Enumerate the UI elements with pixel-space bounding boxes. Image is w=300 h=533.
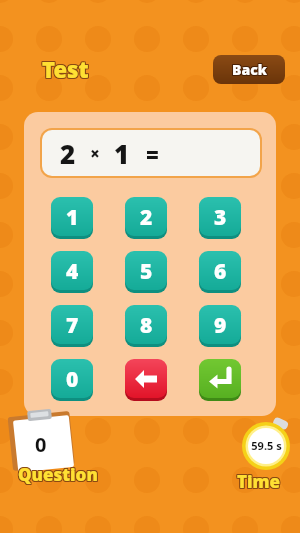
button[interactable]: Time [237,470,281,493]
button[interactable]: 5 [125,251,167,293]
button[interactable]: Back [213,55,285,84]
staticText: 4 [66,257,79,286]
staticText: Back [233,60,268,79]
staticText: 9 [214,311,227,340]
staticText: Test [43,54,90,84]
button[interactable]: 0 [51,359,93,401]
button[interactable]: Test [40,54,91,84]
staticText: Back [233,59,268,78]
staticText: Time [236,471,280,494]
staticText: 1 [114,136,130,171]
button[interactable]: Backspace [125,359,167,401]
staticText: Back [231,59,266,78]
staticText: 2 [60,136,76,171]
staticText: Test [43,53,90,83]
staticText: 8 [140,311,153,340]
button[interactable]: 0 [4,408,78,470]
staticText: Time [238,470,282,493]
staticText: Back [232,59,267,78]
staticText: Question [17,463,97,486]
staticText: Question [19,463,99,486]
staticText: Back [232,60,267,79]
button[interactable]: 3 [199,197,241,239]
staticText: 2 [140,203,153,232]
staticText: Back [231,61,266,80]
staticText: Time [238,471,282,494]
staticText: 6 [214,257,227,286]
button[interactable]: 59.5 s [236,412,296,472]
button[interactable]: 2 [42,130,260,176]
staticText: Test [42,55,89,85]
staticText: Time [236,469,280,492]
staticText: Question [19,464,99,487]
button[interactable]: 1 [51,197,93,239]
staticText: Question [18,464,98,487]
staticText: Question [18,463,98,486]
staticText: 7 [66,311,79,340]
staticText: Time [237,469,281,492]
staticText: 3 [214,203,227,232]
button[interactable]: 2 [125,197,167,239]
staticText: Time [237,471,281,494]
staticText: Question [17,464,97,487]
button[interactable]: 6 [199,251,241,293]
staticText: 0 [35,431,47,458]
staticText: Test [41,54,88,84]
staticText: Back [232,61,267,80]
staticText: 5 [140,257,153,286]
staticText: Question [18,462,98,485]
staticText: Test [42,54,89,84]
button[interactable]: 8 [125,305,167,347]
staticText: Time [236,470,280,493]
staticText: × [90,142,100,165]
staticText: Back [231,60,266,79]
staticText: Back [233,61,268,80]
staticText: Question [19,462,99,485]
button[interactable]: 9 [199,305,241,347]
staticText: Test [42,53,89,83]
staticText: 59.5 s [251,438,282,453]
staticText: Test [41,55,88,85]
staticText: 1 [66,203,79,232]
button[interactable]: 7 [51,305,93,347]
staticText: Test [43,55,90,85]
staticText: = [146,139,159,169]
staticText: Time [237,470,281,493]
staticText: Test [41,53,88,83]
button[interactable]: Enter [199,359,241,401]
button[interactable]: 4 [51,251,93,293]
staticText: Time [238,469,282,492]
button[interactable]: Question [18,463,98,486]
staticText: Question [17,462,97,485]
staticText: 0 [66,365,79,394]
